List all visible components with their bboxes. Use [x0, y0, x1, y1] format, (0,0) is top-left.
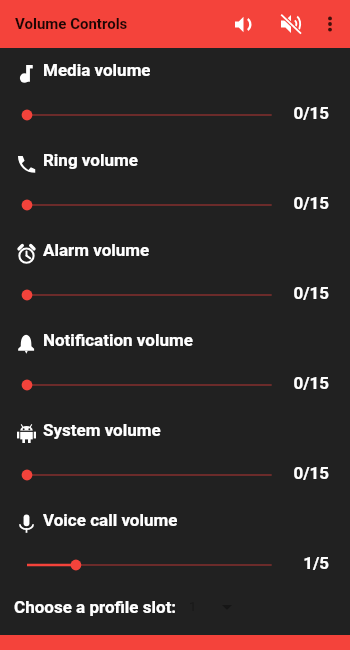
staticText: Media volume	[43, 60, 151, 80]
button[interactable]: System volume	[0, 408, 350, 498]
button[interactable]: Media volume	[0, 48, 350, 138]
button[interactable]: Voice call volume	[0, 498, 350, 588]
staticText: Voice call volume	[43, 510, 178, 530]
staticText: Alarm volume	[43, 240, 150, 260]
button[interactable]: Mute all	[270, 0, 312, 48]
staticText: 0/15	[293, 373, 329, 393]
staticText: 0/15	[293, 103, 329, 123]
button[interactable]: Ring volume	[0, 138, 350, 228]
button[interactable]: Choose a profile slot:	[14, 588, 350, 625]
staticText: Volume Controls	[15, 15, 128, 33]
staticText: 0/15	[293, 283, 329, 303]
staticText: Ring volume	[43, 150, 138, 170]
staticText: Notification volume	[43, 330, 193, 350]
button[interactable]: Notification volume	[0, 318, 350, 408]
button[interactable]: Alarm volume	[0, 228, 350, 318]
staticText: System volume	[43, 420, 161, 440]
button[interactable]: More options	[312, 0, 348, 48]
button[interactable]: Volume up	[222, 0, 264, 48]
staticText: Choose a profile slot:	[14, 597, 177, 617]
staticText: 0/15	[293, 193, 329, 213]
staticText: 0/15	[293, 463, 329, 483]
staticText: 1/5	[303, 553, 329, 573]
